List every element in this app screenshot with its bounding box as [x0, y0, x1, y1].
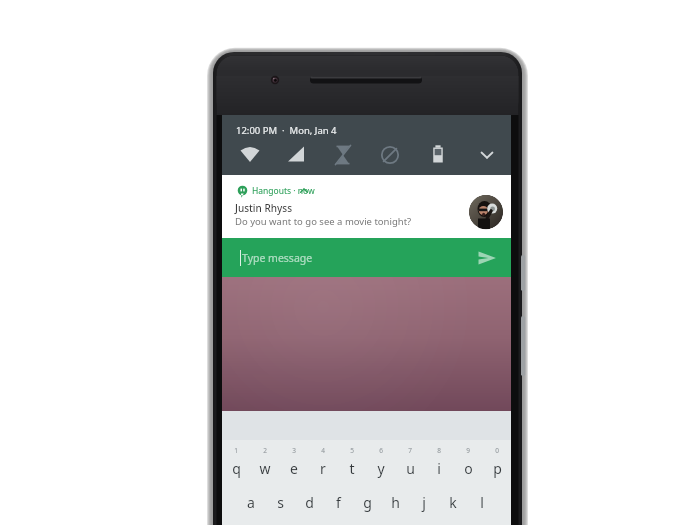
staticText: g [363, 493, 372, 512]
staticText: u [406, 459, 415, 478]
staticText: 9 [466, 446, 470, 455]
staticText: i [437, 459, 441, 478]
staticText: 5 [350, 446, 354, 455]
button[interactable] [280, 444, 309, 478]
button[interactable] [482, 444, 511, 478]
button[interactable]: Justin Rhyss avatar [469, 195, 503, 229]
button[interactable] [222, 175, 511, 238]
button[interactable] [439, 482, 468, 516]
staticText: q [232, 459, 241, 478]
staticText: 4 [321, 446, 325, 455]
button[interactable] [294, 482, 323, 516]
staticText: Justin Rhyss [235, 201, 293, 215]
button[interactable]: Send [472, 243, 502, 273]
staticText: k [449, 493, 457, 512]
staticText: a [247, 493, 255, 512]
button[interactable] [352, 482, 381, 516]
staticText: e [290, 459, 298, 478]
staticText: f [336, 493, 341, 512]
staticText: Hangouts · now [252, 185, 315, 197]
button[interactable]: Expand quick settings [469, 139, 505, 171]
button[interactable]: Vibrate [325, 139, 361, 171]
button[interactable] [251, 444, 280, 478]
button[interactable]: Mobile signal [278, 139, 314, 171]
button[interactable] [265, 482, 294, 516]
staticText: d [305, 493, 314, 512]
staticText: w [259, 459, 271, 478]
staticText: l [480, 493, 484, 512]
button[interactable] [424, 444, 453, 478]
button[interactable] [222, 444, 251, 478]
button[interactable] [381, 482, 410, 516]
staticText: o [464, 459, 473, 478]
button[interactable] [323, 482, 352, 516]
button[interactable] [236, 482, 265, 516]
staticText: 12:00 PM · Mon, Jan 4 [236, 124, 337, 137]
button[interactable] [338, 444, 367, 478]
button[interactable] [367, 444, 396, 478]
staticText: 2 [263, 446, 267, 455]
button[interactable]: Do not disturb [372, 139, 408, 171]
staticText: 3 [292, 446, 296, 455]
staticText: s [277, 493, 284, 512]
staticText: Do you want to go see a movie tonight? [235, 215, 412, 228]
staticText: y [377, 459, 385, 478]
button[interactable] [222, 238, 511, 277]
button[interactable] [410, 482, 439, 516]
staticText: h [391, 493, 400, 512]
staticText: Type message [242, 251, 313, 265]
staticText: r [320, 459, 326, 478]
staticText: 6 [379, 446, 383, 455]
button[interactable] [453, 444, 482, 478]
staticText: 7 [408, 446, 412, 455]
button[interactable] [395, 444, 424, 478]
staticText: j [422, 493, 426, 512]
staticText: 1 [234, 446, 238, 455]
staticText: 8 [437, 446, 441, 455]
button[interactable] [468, 482, 497, 516]
button[interactable]: Battery [420, 139, 456, 171]
button[interactable] [309, 444, 338, 478]
staticText: t [349, 459, 355, 478]
staticText: 0 [495, 446, 499, 455]
button[interactable]: Wi-Fi [232, 139, 268, 171]
staticText: p [493, 459, 502, 478]
